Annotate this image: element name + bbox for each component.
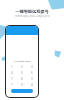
staticText: 1 — [11, 65, 13, 69]
staticText: 3 — [31, 65, 33, 69]
button[interactable]: 4 — [9, 70, 15, 76]
staticText: 2 — [21, 65, 23, 69]
staticText: 5 — [21, 71, 23, 75]
button[interactable]: 8 — [19, 76, 25, 82]
button[interactable]: Call — [11, 89, 33, 93]
button[interactable]: 2 — [19, 64, 25, 70]
staticText: 0 — [21, 83, 23, 87]
button[interactable]: 7 — [9, 76, 15, 82]
button[interactable]: 9 — [29, 76, 35, 82]
staticText: 8 — [21, 77, 23, 81]
staticText: * — [11, 83, 13, 87]
staticText: # — [31, 83, 33, 87]
staticText: 138 0000 0000 — [14, 59, 31, 62]
button[interactable]: 5 — [19, 70, 25, 76]
button[interactable]: # — [29, 82, 35, 88]
button[interactable]: 6 — [29, 70, 35, 76]
button[interactable]: * — [9, 82, 15, 88]
staticText: 一键智能远程拨号 — [15, 9, 49, 14]
button[interactable]: 3 — [29, 64, 35, 70]
staticText: 无需手动输入号码一键直达对方 — [15, 15, 50, 18]
staticText: 6 — [31, 71, 33, 75]
button[interactable]: 0 — [19, 82, 25, 88]
staticText: 9 — [31, 77, 33, 81]
button[interactable]: 1 — [9, 64, 15, 70]
staticText: 7 — [11, 77, 13, 81]
staticText: 4 — [11, 71, 13, 75]
